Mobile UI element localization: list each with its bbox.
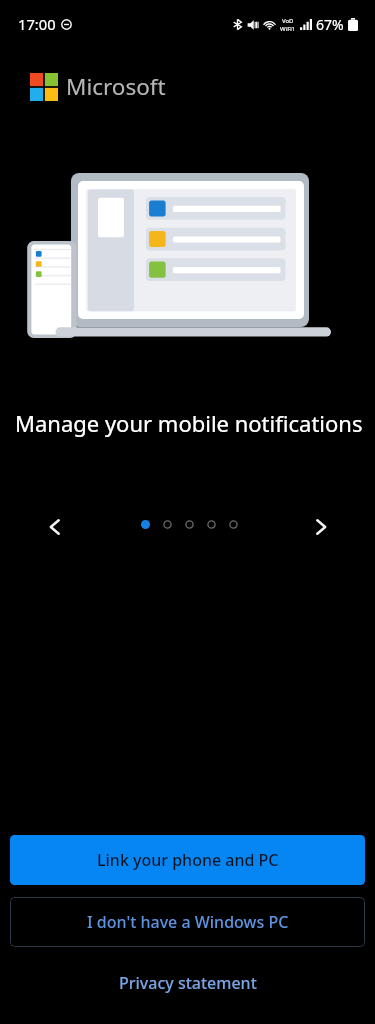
- staticText: Privacy statement: [119, 972, 257, 994]
- button[interactable]: Next: [301, 507, 341, 547]
- staticText: Microsoft: [66, 71, 166, 102]
- staticText: WiFi1: [280, 25, 296, 33]
- button[interactable]: Previous: [34, 507, 74, 547]
- staticText: VoD: [282, 17, 294, 25]
- staticText: Link your phone and PC: [97, 849, 279, 871]
- staticText: Manage your mobile notifications: [15, 408, 363, 438]
- staticText: I don't have a Windows PC: [87, 911, 289, 933]
- staticText: 67%: [316, 15, 344, 34]
- button[interactable]: Privacy statement: [111, 966, 265, 1000]
- button[interactable]: I don't have a Windows PC: [10, 897, 365, 947]
- staticText: 17:00: [18, 14, 56, 34]
- button[interactable]: Link your phone and PC: [10, 835, 365, 885]
